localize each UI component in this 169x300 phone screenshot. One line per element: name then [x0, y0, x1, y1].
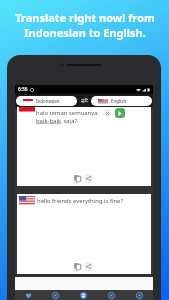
staticText: Translate right now! from	[15, 10, 155, 25]
button[interactable]: Copy	[73, 174, 82, 183]
button[interactable]: Translate	[42, 290, 69, 300]
button[interactable]: English	[91, 96, 152, 106]
button[interactable]: Share	[84, 174, 93, 183]
staticText: Indonesian to English.	[24, 25, 146, 40]
button[interactable]: History	[97, 290, 125, 300]
button[interactable]: Translate	[115, 108, 125, 118]
button[interactable]: Favorites	[15, 290, 42, 300]
button[interactable]: Share	[84, 262, 93, 271]
staticText: saja?	[62, 117, 78, 125]
button[interactable]: Account	[69, 290, 97, 300]
staticText: 6:56	[18, 86, 28, 93]
button[interactable]: Copy	[73, 262, 82, 271]
button[interactable]: Clear	[103, 109, 111, 117]
button[interactable]: Indonesian	[16, 96, 77, 106]
staticText: English	[111, 98, 127, 104]
staticText: baik-baik	[36, 117, 62, 125]
button[interactable]: Swap languages	[77, 94, 91, 107]
button[interactable]: halo teman semuanya	[17, 107, 151, 186]
staticText: hello friends everything is fine?	[37, 197, 123, 205]
staticText: halo teman semuanya	[36, 109, 98, 117]
button[interactable]: Settings	[125, 290, 153, 300]
button[interactable]: hello friends everything is fine?	[17, 194, 151, 274]
staticText: Indonesian	[36, 98, 60, 104]
